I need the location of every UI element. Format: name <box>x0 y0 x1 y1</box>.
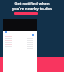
staticText: Get notified when you're nearby to-dos <box>2 1 62 11</box>
